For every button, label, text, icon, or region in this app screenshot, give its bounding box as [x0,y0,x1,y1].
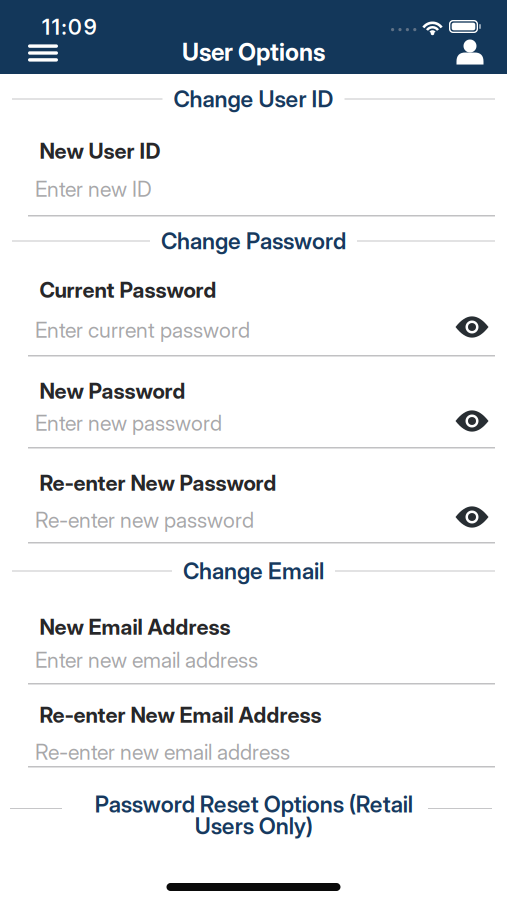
button[interactable]: Enter new ID [28,173,495,217]
staticText: Change Password [161,228,346,254]
staticText: 1 [42,14,50,40]
staticText: New User ID [39,138,160,164]
staticText: Enter new password [35,410,222,436]
staticText: Re-enter New Password [39,470,276,496]
staticText: New Email Address [39,614,230,640]
staticText: Re-enter new email address [35,739,290,765]
staticText: : [61,14,66,40]
staticText: Change Email [183,558,324,584]
button[interactable]: Show password [450,406,494,436]
button[interactable]: Show password [450,312,494,342]
button[interactable]: Profile [450,35,490,69]
button[interactable]: Enter new password [28,407,495,449]
button[interactable]: Password Reset Options (Retail Users Onl… [0,791,507,847]
staticText: Enter new email address [35,647,258,673]
staticText: 0 [68,14,82,40]
staticText: 9 [84,14,97,40]
button[interactable]: Re-enter new password [28,504,495,544]
staticText: New Password [39,378,185,404]
button[interactable]: Menu [21,36,65,70]
button[interactable]: Show password [450,502,494,532]
button[interactable]: Enter current password [28,314,495,357]
staticText: Enter new ID [35,176,152,202]
staticText: Password Reset Options (Retail Users Onl… [94,791,412,839]
staticText: Re-enter New Email Address [39,702,321,728]
staticText: Enter current password [35,317,250,343]
staticText: Current Password [39,277,216,303]
button[interactable]: Enter new email address [28,644,495,685]
staticText: User Options [182,38,325,66]
staticText: 1 [52,14,60,40]
button[interactable]: Re-enter new email address [28,736,495,768]
staticText: Re-enter new password [35,507,254,533]
staticText: Change User ID [173,86,333,112]
